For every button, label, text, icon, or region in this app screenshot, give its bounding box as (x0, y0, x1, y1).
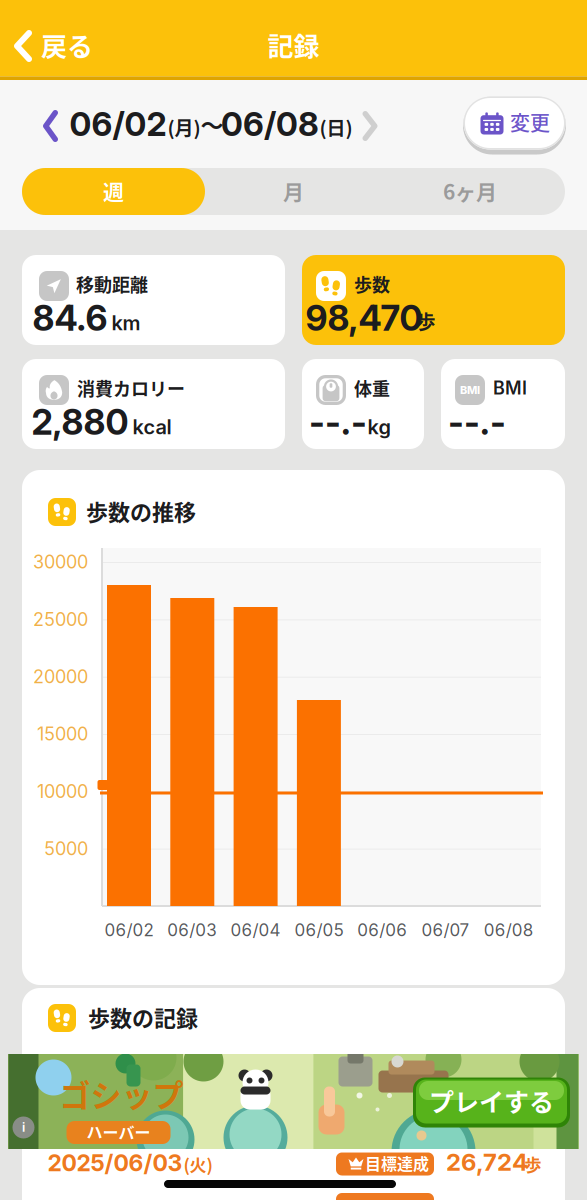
staticText: 15000 (37, 723, 88, 745)
staticText: 06/02 (69, 104, 166, 144)
staticText: 戻る (41, 26, 93, 64)
staticText: 歩 (416, 307, 435, 335)
staticText: 週 (103, 175, 124, 206)
staticText: --.- (448, 401, 506, 443)
staticText: 84.6 (32, 297, 107, 339)
staticText: 消費カロリー (77, 375, 185, 401)
staticText: 06/08 (484, 920, 534, 940)
staticText: 06/04 (231, 920, 281, 940)
staticText: 記録 (267, 26, 319, 64)
staticText: 2,880 (31, 401, 128, 443)
staticText: BMI (460, 383, 480, 397)
staticText: km (111, 311, 140, 335)
staticText: プレイする (429, 1082, 554, 1119)
staticText: ハーバー (86, 1120, 150, 1143)
staticText: kcal (132, 415, 171, 439)
staticText: 5000 (44, 838, 88, 860)
staticText: 20000 (33, 666, 88, 688)
staticText: 06/05 (294, 920, 343, 940)
staticText: 06/08 (221, 104, 319, 144)
staticText: --.- (309, 401, 367, 443)
staticText: 25000 (33, 608, 88, 630)
staticText: 体重 (354, 375, 390, 401)
staticText: (日) (319, 113, 352, 141)
staticText: kg (367, 415, 390, 439)
staticText: 歩数の記録 (88, 1001, 198, 1033)
staticText: (月) (167, 113, 200, 141)
staticText: 歩数の推移 (86, 495, 196, 527)
staticText: 26,724 (446, 1147, 528, 1176)
staticText: 月 (283, 175, 304, 206)
staticText: 06/02 (104, 920, 153, 940)
staticText: 6ヶ月 (443, 175, 497, 206)
staticText: 歩 (524, 1152, 541, 1176)
staticText: ゴシップ (59, 1071, 183, 1116)
staticText: 06/06 (357, 920, 407, 940)
staticText: 移動距離 (76, 271, 148, 297)
staticText: 06/03 (167, 920, 217, 940)
staticText: 歩数 (354, 271, 390, 297)
staticText: i (22, 1120, 25, 1135)
staticText: BMI (493, 377, 527, 399)
staticText: 2025/06/03 (47, 1149, 182, 1177)
staticText: 98,470 (305, 297, 422, 339)
staticText: 10000 (37, 780, 88, 802)
staticText: 〜 (200, 107, 223, 141)
staticText: (火) (183, 1152, 212, 1176)
staticText: 30000 (33, 551, 88, 573)
staticText: 変更 (510, 107, 550, 136)
staticText: 06/07 (421, 920, 469, 940)
staticText: 目標達成 (365, 1151, 429, 1175)
